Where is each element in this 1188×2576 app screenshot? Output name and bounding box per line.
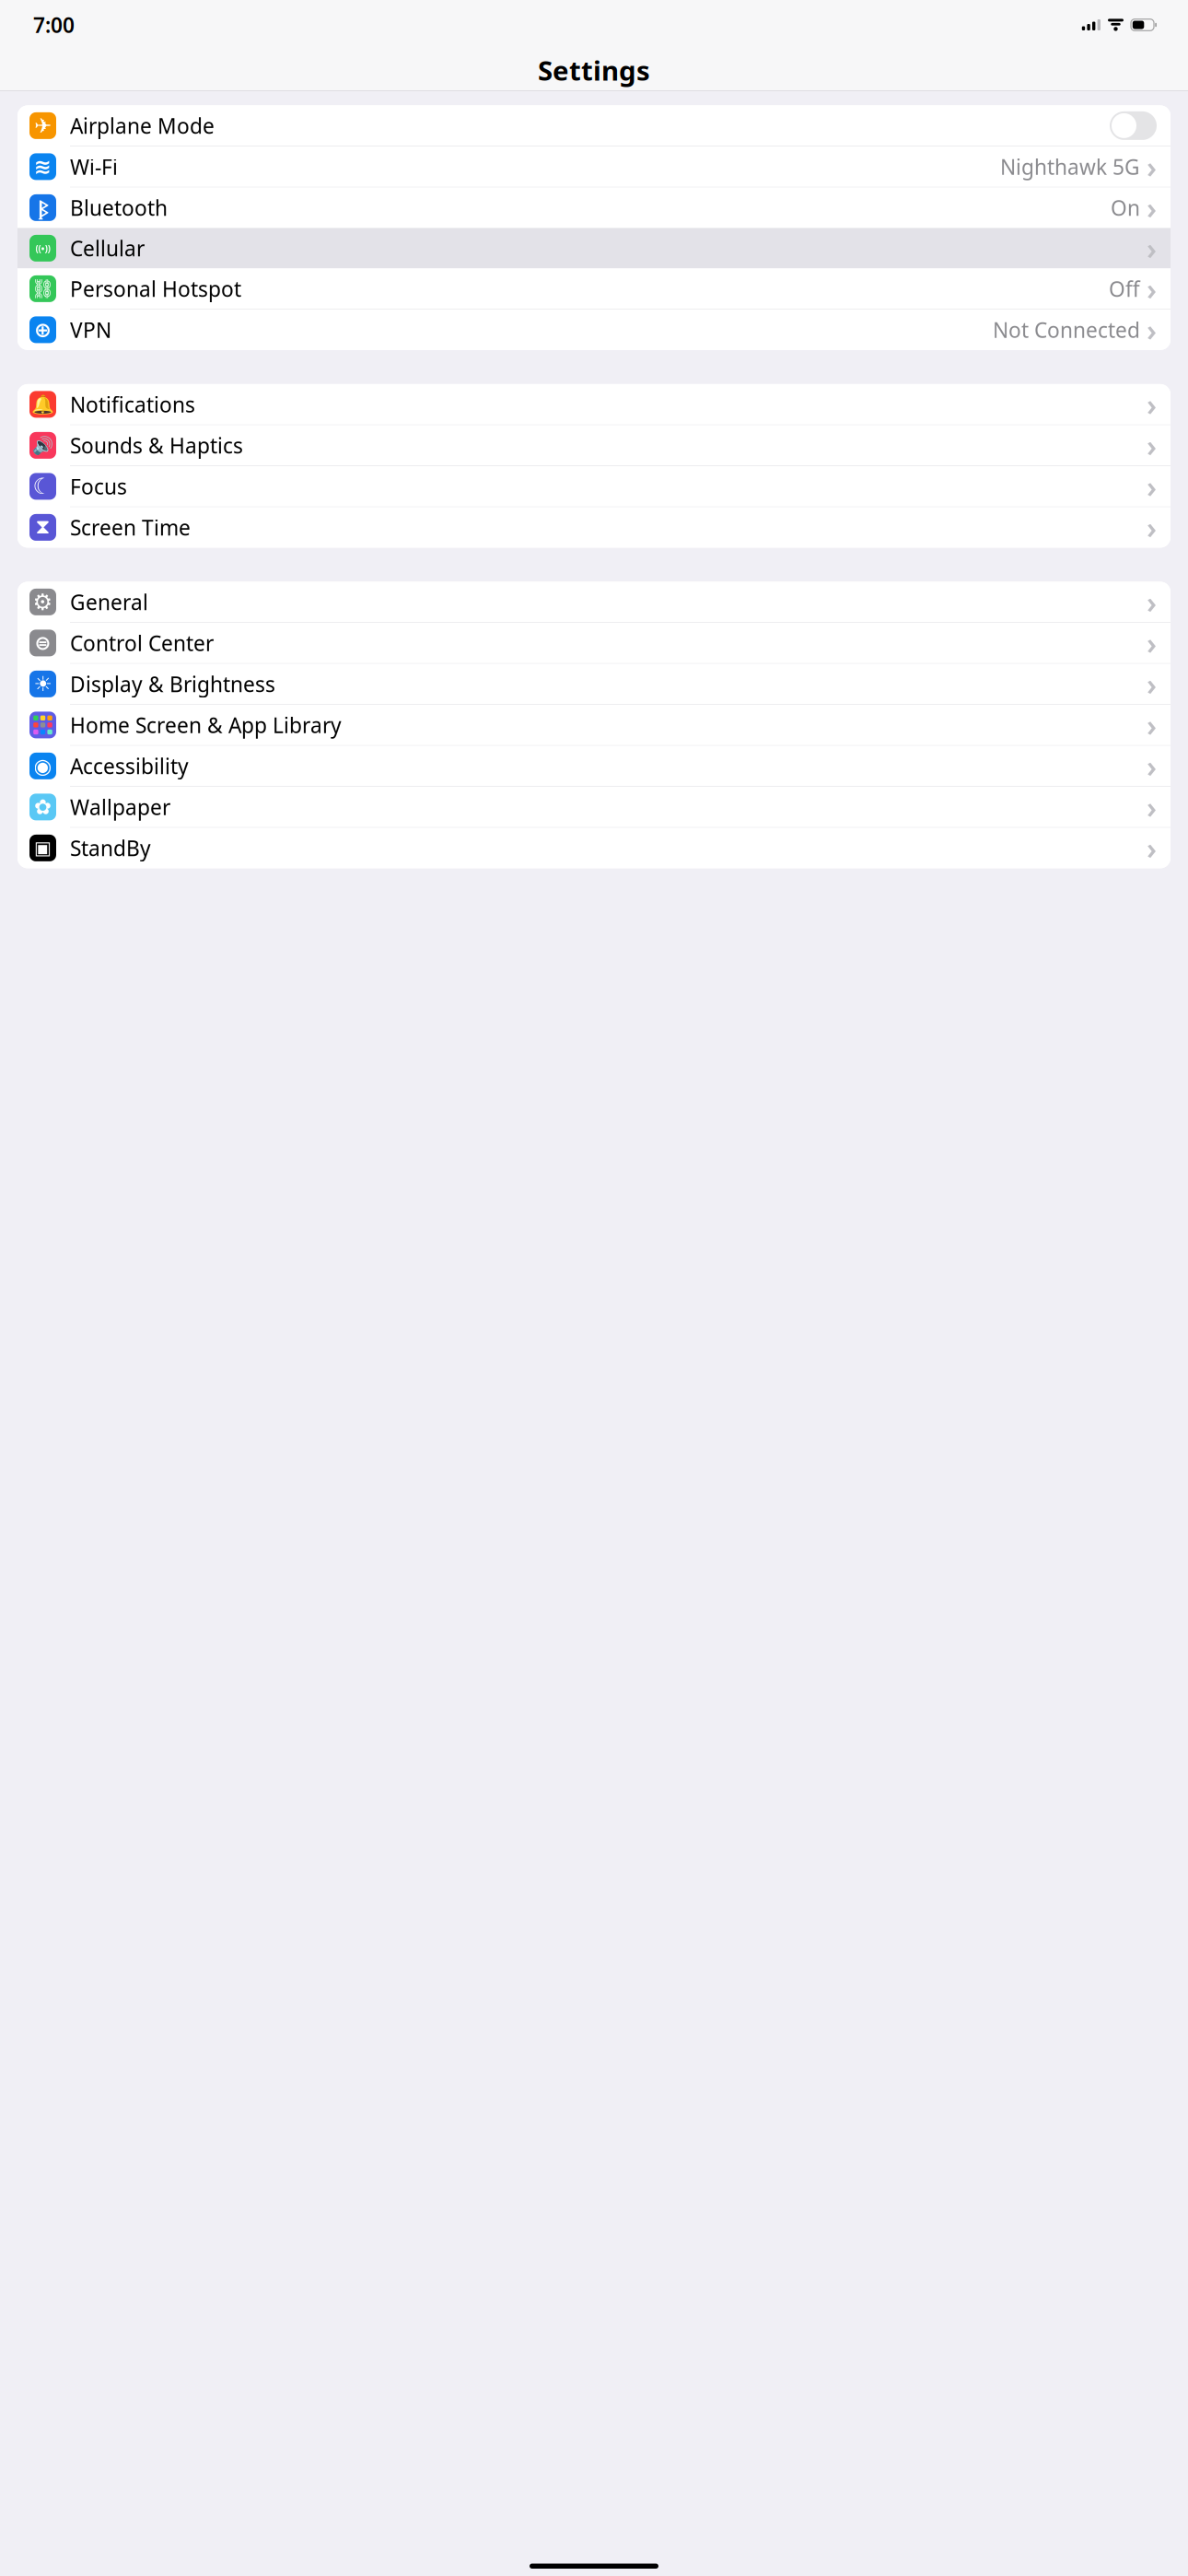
staticText: › (1147, 787, 1157, 827)
staticText: VPN (70, 316, 111, 344)
staticText: ☾ (33, 474, 53, 499)
staticText: › (1147, 664, 1157, 704)
button[interactable]: 🔔 (17, 384, 1171, 425)
staticText: › (1147, 828, 1157, 868)
staticText: Notifications (70, 390, 195, 418)
staticText: ᛒ (38, 195, 48, 221)
button[interactable]: ((•)) (17, 228, 1171, 268)
staticText: On (1111, 194, 1140, 221)
staticText: Display & Brightness (70, 670, 275, 698)
staticText: Screen Time (70, 513, 191, 541)
staticText: Bluetooth (70, 194, 168, 221)
button[interactable]: ✿ (17, 787, 1171, 827)
staticText: › (1147, 467, 1157, 506)
staticText: ▣ (34, 838, 52, 858)
button[interactable]: ☾ (17, 466, 1171, 507)
button[interactable]: ▣ (17, 828, 1171, 868)
staticText: › (1147, 188, 1157, 227)
staticText: General (70, 588, 148, 616)
staticText: › (1147, 582, 1157, 622)
staticText: › (1147, 746, 1157, 786)
button[interactable]: ⊜ (17, 623, 1171, 663)
button[interactable]: ⛓ (17, 268, 1171, 309)
staticText: › (1147, 705, 1157, 745)
staticText: › (1147, 508, 1157, 547)
button[interactable]: ⧗ (17, 507, 1171, 548)
staticText: Focus (70, 472, 127, 500)
staticText: Settings (538, 52, 650, 88)
staticText: Home Screen & App Library (70, 711, 342, 739)
staticText: Wallpaper (70, 793, 170, 821)
button[interactable]: ᛒ (17, 187, 1171, 228)
staticText: Airplane Mode (70, 112, 215, 139)
staticText: ((•)) (35, 242, 50, 255)
staticText: › (1147, 229, 1157, 268)
staticText: › (1147, 269, 1157, 308)
button[interactable]: Home Screen & App Library (17, 705, 1171, 745)
staticText: › (1147, 623, 1157, 663)
staticText: ⚙ (33, 589, 53, 615)
staticText: Not Connected (993, 316, 1140, 344)
staticText: 🔔 (31, 394, 54, 415)
staticText: Control Center (70, 629, 214, 657)
staticText: › (1147, 147, 1157, 186)
staticText: 7:00 (33, 11, 75, 39)
staticText: Off (1109, 275, 1140, 303)
button[interactable]: ☀ (17, 664, 1171, 704)
button[interactable]: ⚙ (17, 582, 1171, 622)
staticText: ✿ (34, 795, 52, 819)
button[interactable]: ⊕ (17, 309, 1171, 350)
staticText: › (1147, 385, 1157, 424)
staticText: Nighthawk 5G (1000, 153, 1140, 180)
staticText: ⛓ (31, 278, 54, 299)
button[interactable]: ≋ (17, 146, 1171, 187)
staticText: Accessibility (70, 752, 189, 780)
staticText: 🔊 (32, 436, 53, 455)
staticText: ⧗ (35, 517, 50, 537)
button[interactable]: ◉ (17, 746, 1171, 786)
staticText: ⊕ (34, 318, 52, 342)
staticText: ≋ (34, 155, 52, 178)
staticText: › (1147, 310, 1157, 349)
staticText: ☀ (34, 672, 52, 696)
staticText: ⊜ (35, 632, 51, 654)
staticText: Sounds & Haptics (70, 431, 243, 459)
button[interactable]: ✈ (17, 105, 1171, 146)
staticText: Cellular (70, 234, 145, 262)
staticText: ✈ (34, 114, 52, 137)
staticText: StandBy (70, 834, 151, 862)
staticText: Wi-Fi (70, 153, 118, 180)
button[interactable]: 🔊 (17, 425, 1171, 466)
staticText: Personal Hotspot (70, 275, 241, 303)
staticText: › (1147, 426, 1157, 465)
staticText: ◉ (34, 754, 52, 778)
